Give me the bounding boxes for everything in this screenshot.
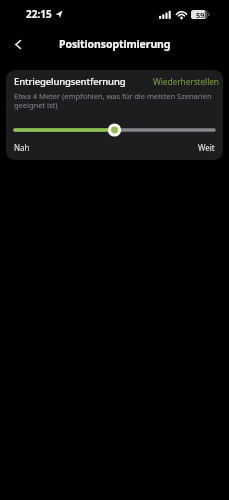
button[interactable] — [14, 122, 215, 138]
staticText: 22:15 — [26, 7, 52, 21]
staticText: Entriegelungsentfernung — [14, 75, 126, 88]
staticText: Etwa 4 Meter (empfohlen, was für die mei… — [14, 91, 212, 111]
staticText: Wiederherstellen — [153, 76, 219, 88]
button[interactable]: Wiederherstellen — [153, 76, 219, 88]
staticText: Positionsoptimierung — [59, 37, 171, 51]
staticText: Weit — [198, 142, 215, 153]
button[interactable] — [8, 34, 28, 54]
staticText: 59 — [196, 10, 204, 19]
staticText: Nah — [14, 142, 30, 153]
